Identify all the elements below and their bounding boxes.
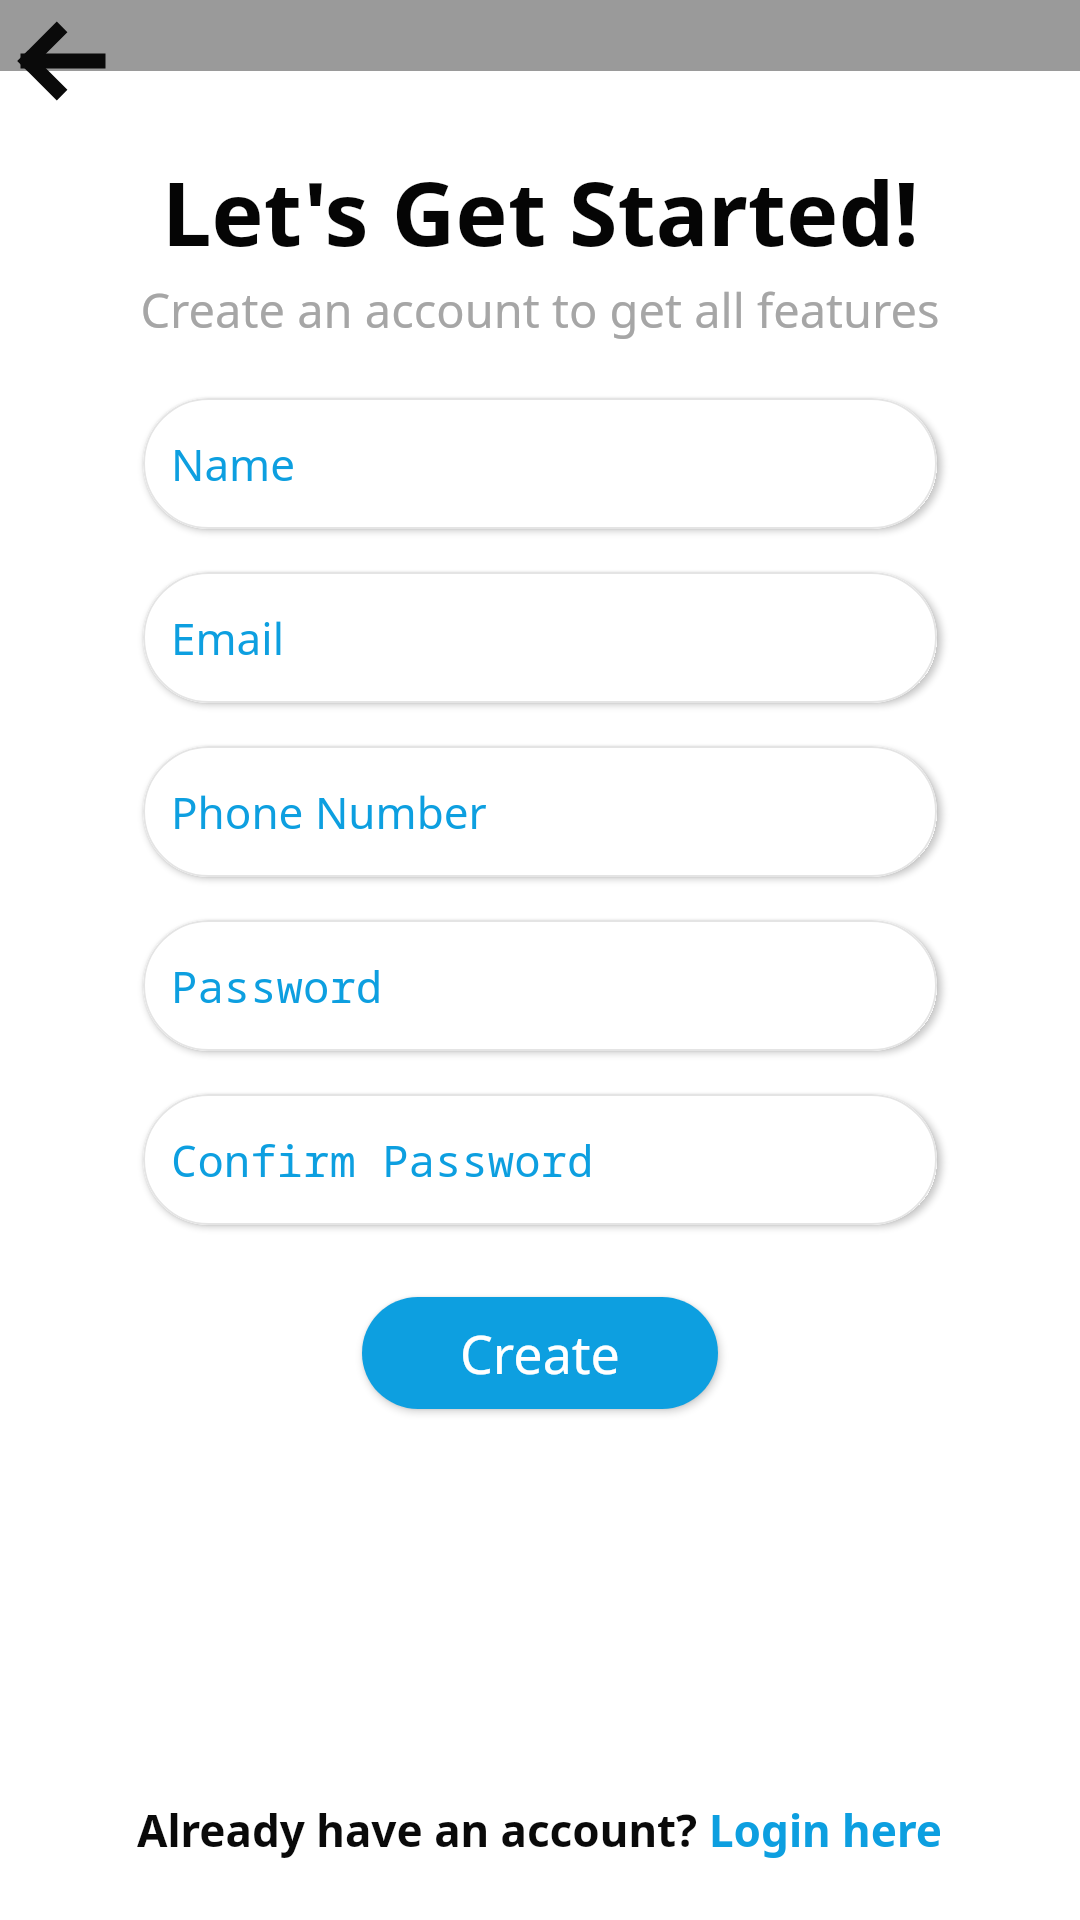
button[interactable]: Back: [12, 16, 112, 106]
button[interactable]: Password: [143, 920, 937, 1051]
staticText: Let's Get Started!: [162, 152, 919, 272]
button[interactable]: Confirm Password: [143, 1094, 937, 1225]
button[interactable]: Phone Number: [143, 746, 937, 877]
staticText: Name: [171, 434, 296, 494]
button[interactable]: Name: [143, 398, 937, 529]
staticText: Email: [171, 608, 284, 668]
button[interactable]: Create: [362, 1297, 718, 1409]
button[interactable]: Email: [143, 572, 937, 703]
staticText: Login here: [709, 1800, 943, 1860]
staticText: Confirm Password: [171, 1130, 594, 1190]
staticText: Create an account to get all features: [140, 278, 940, 342]
staticText: Already have an account?: [137, 1800, 709, 1860]
staticText: Create: [460, 1318, 620, 1389]
staticText: Password: [171, 956, 383, 1016]
button[interactable]: Login here: [709, 1800, 943, 1860]
staticText: Phone Number: [171, 782, 487, 842]
